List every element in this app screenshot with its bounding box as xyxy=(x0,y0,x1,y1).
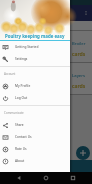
staticText: Communicate xyxy=(4,111,24,115)
staticText: Account xyxy=(4,72,16,76)
button[interactable]: Broiler xyxy=(0,31,92,63)
staticText: Contact Us xyxy=(15,135,32,139)
staticText: Share xyxy=(15,123,24,127)
button[interactable]: Home xyxy=(41,173,51,183)
staticText: Poultry keeping made easy xyxy=(5,33,65,39)
button[interactable]: Log Out xyxy=(0,92,70,104)
staticText: Rate Us xyxy=(15,147,27,151)
staticText: Poultry xyxy=(22,10,40,17)
button[interactable]: Rate Us xyxy=(0,143,70,155)
staticText: cards xyxy=(72,82,86,89)
staticText: Log Out xyxy=(15,96,28,100)
button[interactable]: Settings xyxy=(0,53,70,65)
button[interactable]: More options xyxy=(82,9,90,17)
button[interactable]: Add xyxy=(76,146,90,160)
staticText: My Profile xyxy=(15,84,31,88)
button[interactable]: My Profile xyxy=(0,80,70,92)
staticText: Layers xyxy=(72,73,86,79)
staticText: Settings xyxy=(15,57,28,61)
button[interactable]: Layers xyxy=(0,63,92,95)
button[interactable]: Getting Started xyxy=(0,41,70,53)
button[interactable]: Back xyxy=(14,173,24,183)
button[interactable]: Share xyxy=(0,119,70,131)
staticText: About xyxy=(15,159,25,163)
staticText: Getting Started xyxy=(15,45,39,49)
button[interactable]: About xyxy=(0,155,70,167)
button[interactable]: Recent apps xyxy=(68,173,78,183)
staticText: Broiler xyxy=(72,41,86,47)
button[interactable]: Contact Us xyxy=(0,131,70,143)
staticText: cards xyxy=(72,50,86,57)
